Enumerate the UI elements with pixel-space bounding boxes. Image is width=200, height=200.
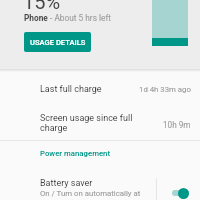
staticText: 10h 9m: [163, 120, 191, 130]
staticText: Battery saver: [40, 178, 93, 189]
staticText: 1d 4h 33m ago: [139, 85, 191, 94]
staticText: 15%: [23, 0, 61, 13]
staticText: Screen usage since full charge: [40, 113, 138, 133]
staticText: Last full charge: [40, 84, 102, 95]
staticText: Phone: [24, 13, 48, 23]
button[interactable]: Last full charge: [0, 76, 200, 102]
staticText: USAGE DETAILS: [30, 38, 86, 47]
button[interactable]: Battery saver: [0, 173, 200, 200]
button[interactable]: Battery saver toggle: [163, 178, 200, 200]
button[interactable]: Screen usage since full charge: [0, 106, 200, 140]
button[interactable]: USAGE DETAILS: [24, 32, 91, 52]
staticText: On / Turn on automatically at 5%: [40, 189, 142, 200]
staticText: Power management: [40, 149, 111, 158]
staticText: - About 5 hrs left: [48, 13, 112, 23]
